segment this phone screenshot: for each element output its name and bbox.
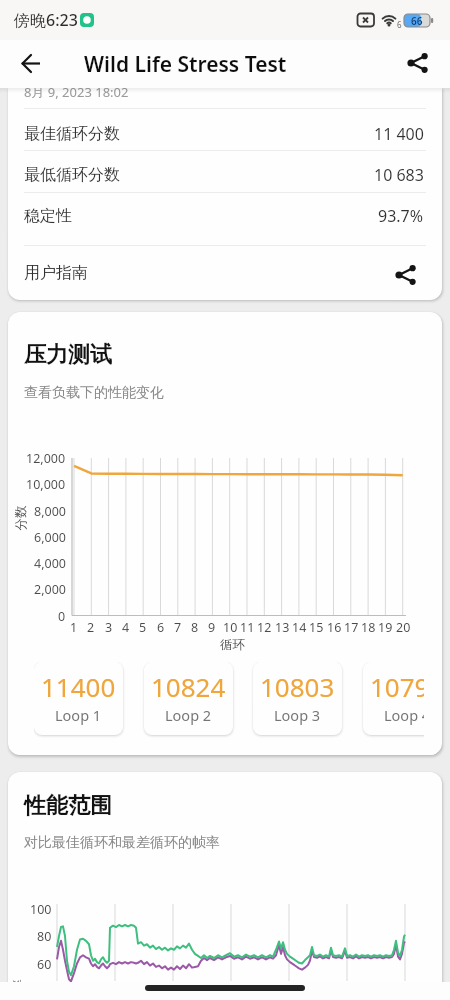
staticText: 19 bbox=[378, 619, 393, 635]
staticText: Wild Life Stress Test bbox=[84, 50, 287, 79]
button[interactable]: 11400 bbox=[34, 662, 123, 735]
staticText: 帧率 bbox=[9, 979, 25, 982]
staticText: 80 bbox=[37, 928, 52, 945]
staticText: Loop 3 bbox=[274, 705, 321, 725]
staticText: 10 683 bbox=[374, 164, 424, 186]
staticText: 10824 bbox=[151, 669, 226, 703]
staticText: 6 bbox=[397, 19, 402, 30]
staticText: 最低循环分数 bbox=[24, 165, 120, 185]
staticText: 查看负载下的性能变化 bbox=[24, 384, 164, 402]
staticText: 7 bbox=[174, 619, 182, 635]
staticText: 4 bbox=[122, 619, 130, 635]
staticText: 1 bbox=[70, 619, 78, 635]
staticText: 11 400 bbox=[374, 123, 424, 145]
button[interactable] bbox=[20, 52, 44, 76]
staticText: 4,000 bbox=[34, 555, 66, 572]
staticText: 11 bbox=[240, 619, 255, 635]
staticText: 6,000 bbox=[34, 529, 66, 546]
staticText: 10803 bbox=[260, 669, 335, 703]
button[interactable] bbox=[8, 88, 34, 112]
staticText: Loop 1 bbox=[55, 705, 102, 725]
button[interactable]: 10803 bbox=[253, 662, 342, 735]
staticText: 傍晚6:23 bbox=[14, 9, 78, 31]
staticText: Loop 4 bbox=[384, 705, 424, 725]
staticText: 压力测试 bbox=[24, 341, 112, 369]
staticText: 93.7% bbox=[378, 205, 424, 227]
staticText: 60 bbox=[37, 956, 52, 973]
staticText: 16 bbox=[327, 619, 342, 635]
staticText: 8,000 bbox=[34, 503, 66, 520]
staticText: 14 bbox=[292, 619, 307, 635]
staticText: 6 bbox=[157, 619, 165, 635]
staticText: 13 bbox=[275, 619, 290, 635]
staticText: 10795 bbox=[370, 669, 424, 703]
staticText: 2,000 bbox=[34, 581, 66, 598]
staticText: 20 bbox=[396, 619, 411, 635]
staticText: Loop 2 bbox=[165, 705, 212, 725]
staticText: 对比最佳循环和最差循环的帧率 bbox=[24, 834, 220, 852]
staticText: 100 bbox=[30, 901, 52, 918]
staticText: 18 bbox=[361, 619, 376, 635]
staticText: 12,000 bbox=[26, 450, 66, 467]
staticText: 10,000 bbox=[26, 476, 66, 493]
staticText: 17 bbox=[344, 619, 359, 635]
staticText: 11400 bbox=[41, 669, 116, 703]
staticText: 性能范围 bbox=[24, 792, 112, 820]
staticText: 9 bbox=[208, 619, 216, 635]
staticText: 12 bbox=[257, 619, 272, 635]
button[interactable]: 10824 bbox=[144, 662, 233, 735]
button[interactable] bbox=[8, 246, 442, 300]
staticText: 10 bbox=[223, 619, 238, 635]
staticText: 最佳循环分数 bbox=[24, 124, 120, 144]
staticText: 2 bbox=[87, 619, 95, 635]
staticText: 分数 bbox=[12, 505, 28, 530]
staticText: 3 bbox=[105, 619, 113, 635]
button[interactable]: 10795 bbox=[363, 662, 424, 735]
staticText: 8 bbox=[191, 619, 199, 635]
staticText: 15 bbox=[309, 619, 324, 635]
staticText: 66 bbox=[411, 14, 423, 27]
staticText: 5 bbox=[139, 619, 147, 635]
staticText: 稳定性 bbox=[24, 206, 72, 226]
staticText: 循环 bbox=[220, 637, 245, 653]
staticText: 用户指南 bbox=[24, 263, 88, 283]
button[interactable] bbox=[0, 40, 26, 64]
staticText: 8月 9, 2023 18:02 bbox=[24, 88, 129, 101]
staticText: 0 bbox=[58, 608, 66, 625]
